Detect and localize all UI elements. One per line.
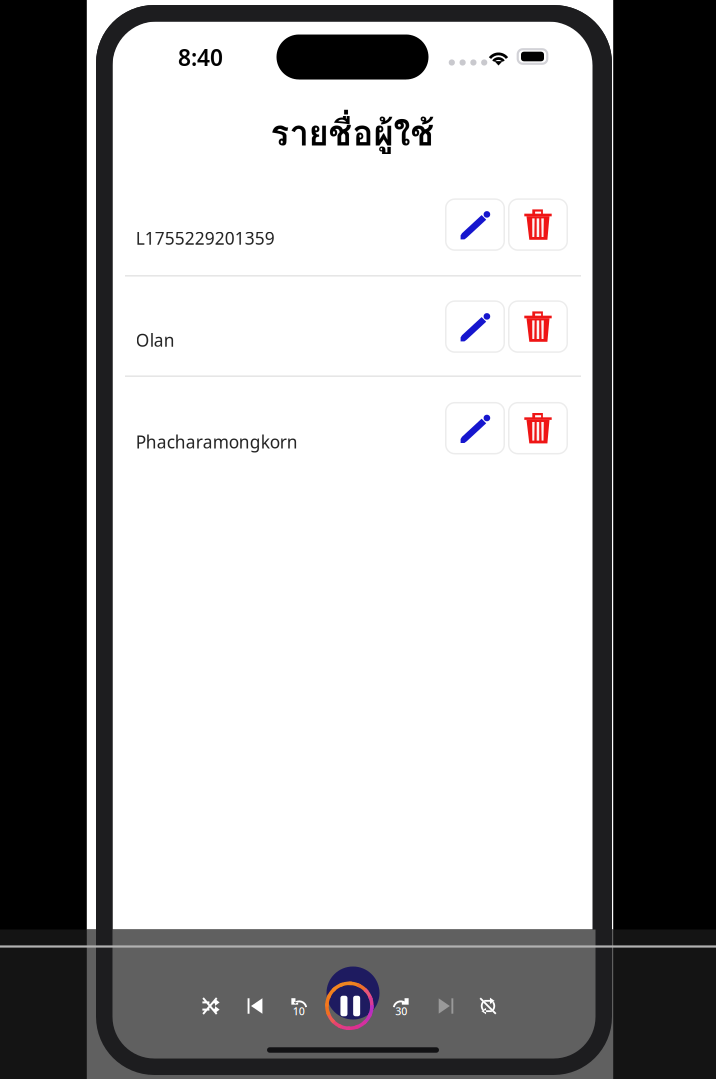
staticText: 10 [293,1004,305,1018]
button[interactable]: Previous track [233,984,277,1028]
staticText: Olan [136,329,175,352]
button[interactable]: Delete user [509,199,567,250]
button[interactable]: Edit user [446,301,504,352]
button[interactable]: Edit user [446,199,504,250]
button[interactable]: Delete user [509,301,567,352]
button[interactable]: Next track [424,984,468,1028]
staticText: L1755229201359 [136,227,275,250]
staticText: 30 [395,1004,407,1018]
button[interactable]: Repeat off [466,984,510,1028]
staticText: 8:40 [178,42,223,72]
staticText: รายชื่อผู้ใช้ [270,106,434,160]
button[interactable]: Shuffle [189,984,233,1028]
staticText: Phacharamongkorn [136,430,298,453]
button[interactable]: Delete user [509,403,567,454]
button[interactable]: Edit user [446,403,504,454]
button[interactable]: Skip forward 30 seconds [379,984,423,1028]
button[interactable]: Skip back 10 seconds [277,984,321,1028]
